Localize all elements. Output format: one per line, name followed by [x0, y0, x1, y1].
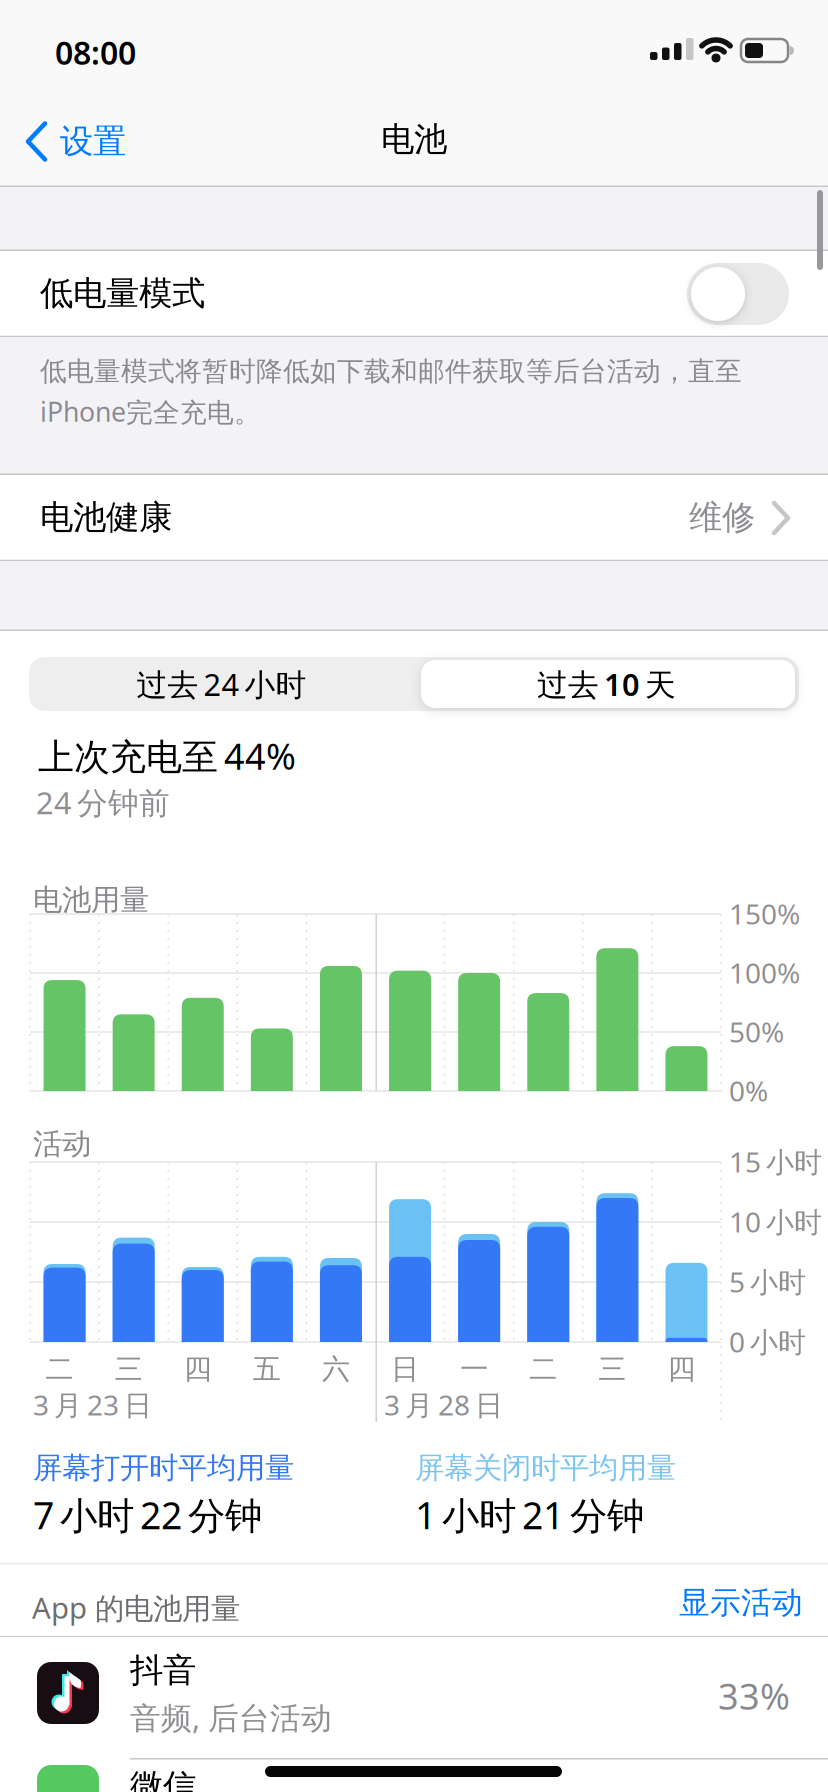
staticText: 屏幕打开时平均用量: [33, 1450, 294, 1486]
button[interactable]: 低电量模式: [0, 251, 828, 335]
staticText: 四: [184, 1352, 212, 1386]
button[interactable]: 过去 24 小时: [29, 657, 414, 711]
button[interactable]: 过去 10 天: [414, 657, 799, 711]
staticText: 三: [598, 1352, 626, 1386]
staticText: App 的电池用量: [32, 1588, 240, 1627]
staticText: 0%: [729, 1072, 768, 1109]
staticText: 音频, 后台活动: [130, 1697, 332, 1738]
staticText: 活动: [33, 1126, 91, 1162]
staticText: 五: [253, 1352, 281, 1386]
staticText: 低电量模式将暂时降低如下载和邮件获取等后台活动，直至 iPhone完全充电。: [40, 355, 742, 429]
staticText: 电池用量: [33, 882, 149, 918]
staticText: 抖音: [130, 1650, 196, 1691]
staticText: 7 小时 22 分钟: [33, 1490, 262, 1540]
staticText: 电池健康: [40, 497, 172, 538]
staticText: 10 小时: [729, 1203, 822, 1240]
staticText: 150%: [729, 895, 800, 932]
button[interactable]: 电池健康: [0, 475, 828, 559]
staticText: 显示活动: [679, 1584, 803, 1622]
staticText: 维修: [689, 497, 755, 538]
staticText: 15 小时: [729, 1143, 822, 1180]
staticText: 0 小时: [729, 1323, 806, 1360]
staticText: 50%: [729, 1013, 784, 1050]
staticText: 一: [460, 1352, 488, 1386]
staticText: 3 月 28 日: [384, 1386, 503, 1423]
button[interactable]: 显示活动: [603, 1584, 803, 1622]
staticText: 二: [45, 1352, 73, 1386]
staticText: 设置: [60, 121, 126, 162]
button[interactable]: 设置: [25, 121, 126, 162]
staticText: 33%: [718, 1672, 790, 1720]
staticText: 二: [529, 1352, 557, 1386]
staticText: 24 分钟前: [36, 782, 170, 823]
staticText: 过去 24 小时: [136, 664, 306, 704]
button[interactable]: 抖音: [0, 1637, 828, 1759]
staticText: 四: [667, 1352, 695, 1386]
staticText: 5 小时: [729, 1263, 806, 1300]
staticText: 3 月 23 日: [33, 1386, 152, 1423]
staticText: 三: [115, 1352, 143, 1386]
staticText: 100%: [729, 954, 800, 991]
staticText: 08:00: [55, 31, 136, 73]
staticText: 微信: [130, 1766, 196, 1792]
staticText: 六: [322, 1352, 350, 1386]
staticText: 电池: [381, 119, 447, 160]
staticText: 低电量模式: [40, 273, 205, 314]
staticText: 过去 10 天: [537, 664, 676, 704]
staticText: 日: [391, 1352, 419, 1386]
staticText: 1 小时 21 分钟: [415, 1490, 644, 1540]
staticText: 屏幕关闭时平均用量: [415, 1450, 676, 1486]
staticText: 上次充电至 44%: [38, 732, 296, 780]
button[interactable]: 微信: [0, 1760, 828, 1792]
